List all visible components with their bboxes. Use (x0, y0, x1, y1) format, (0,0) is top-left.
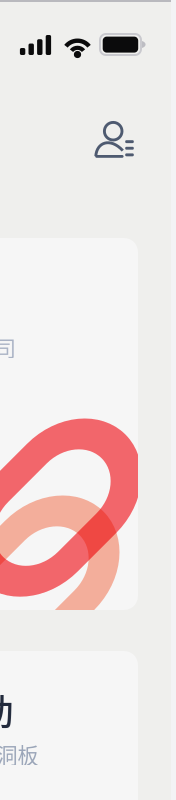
button[interactable]: Contacts (92, 117, 136, 161)
staticText: 剪贴洞板 (0, 739, 38, 769)
button[interactable]: 帮助 (0, 651, 138, 800)
staticText: 帮助 (0, 684, 13, 735)
staticText: 公司 (0, 332, 16, 362)
button[interactable]: 公司 (0, 238, 138, 610)
